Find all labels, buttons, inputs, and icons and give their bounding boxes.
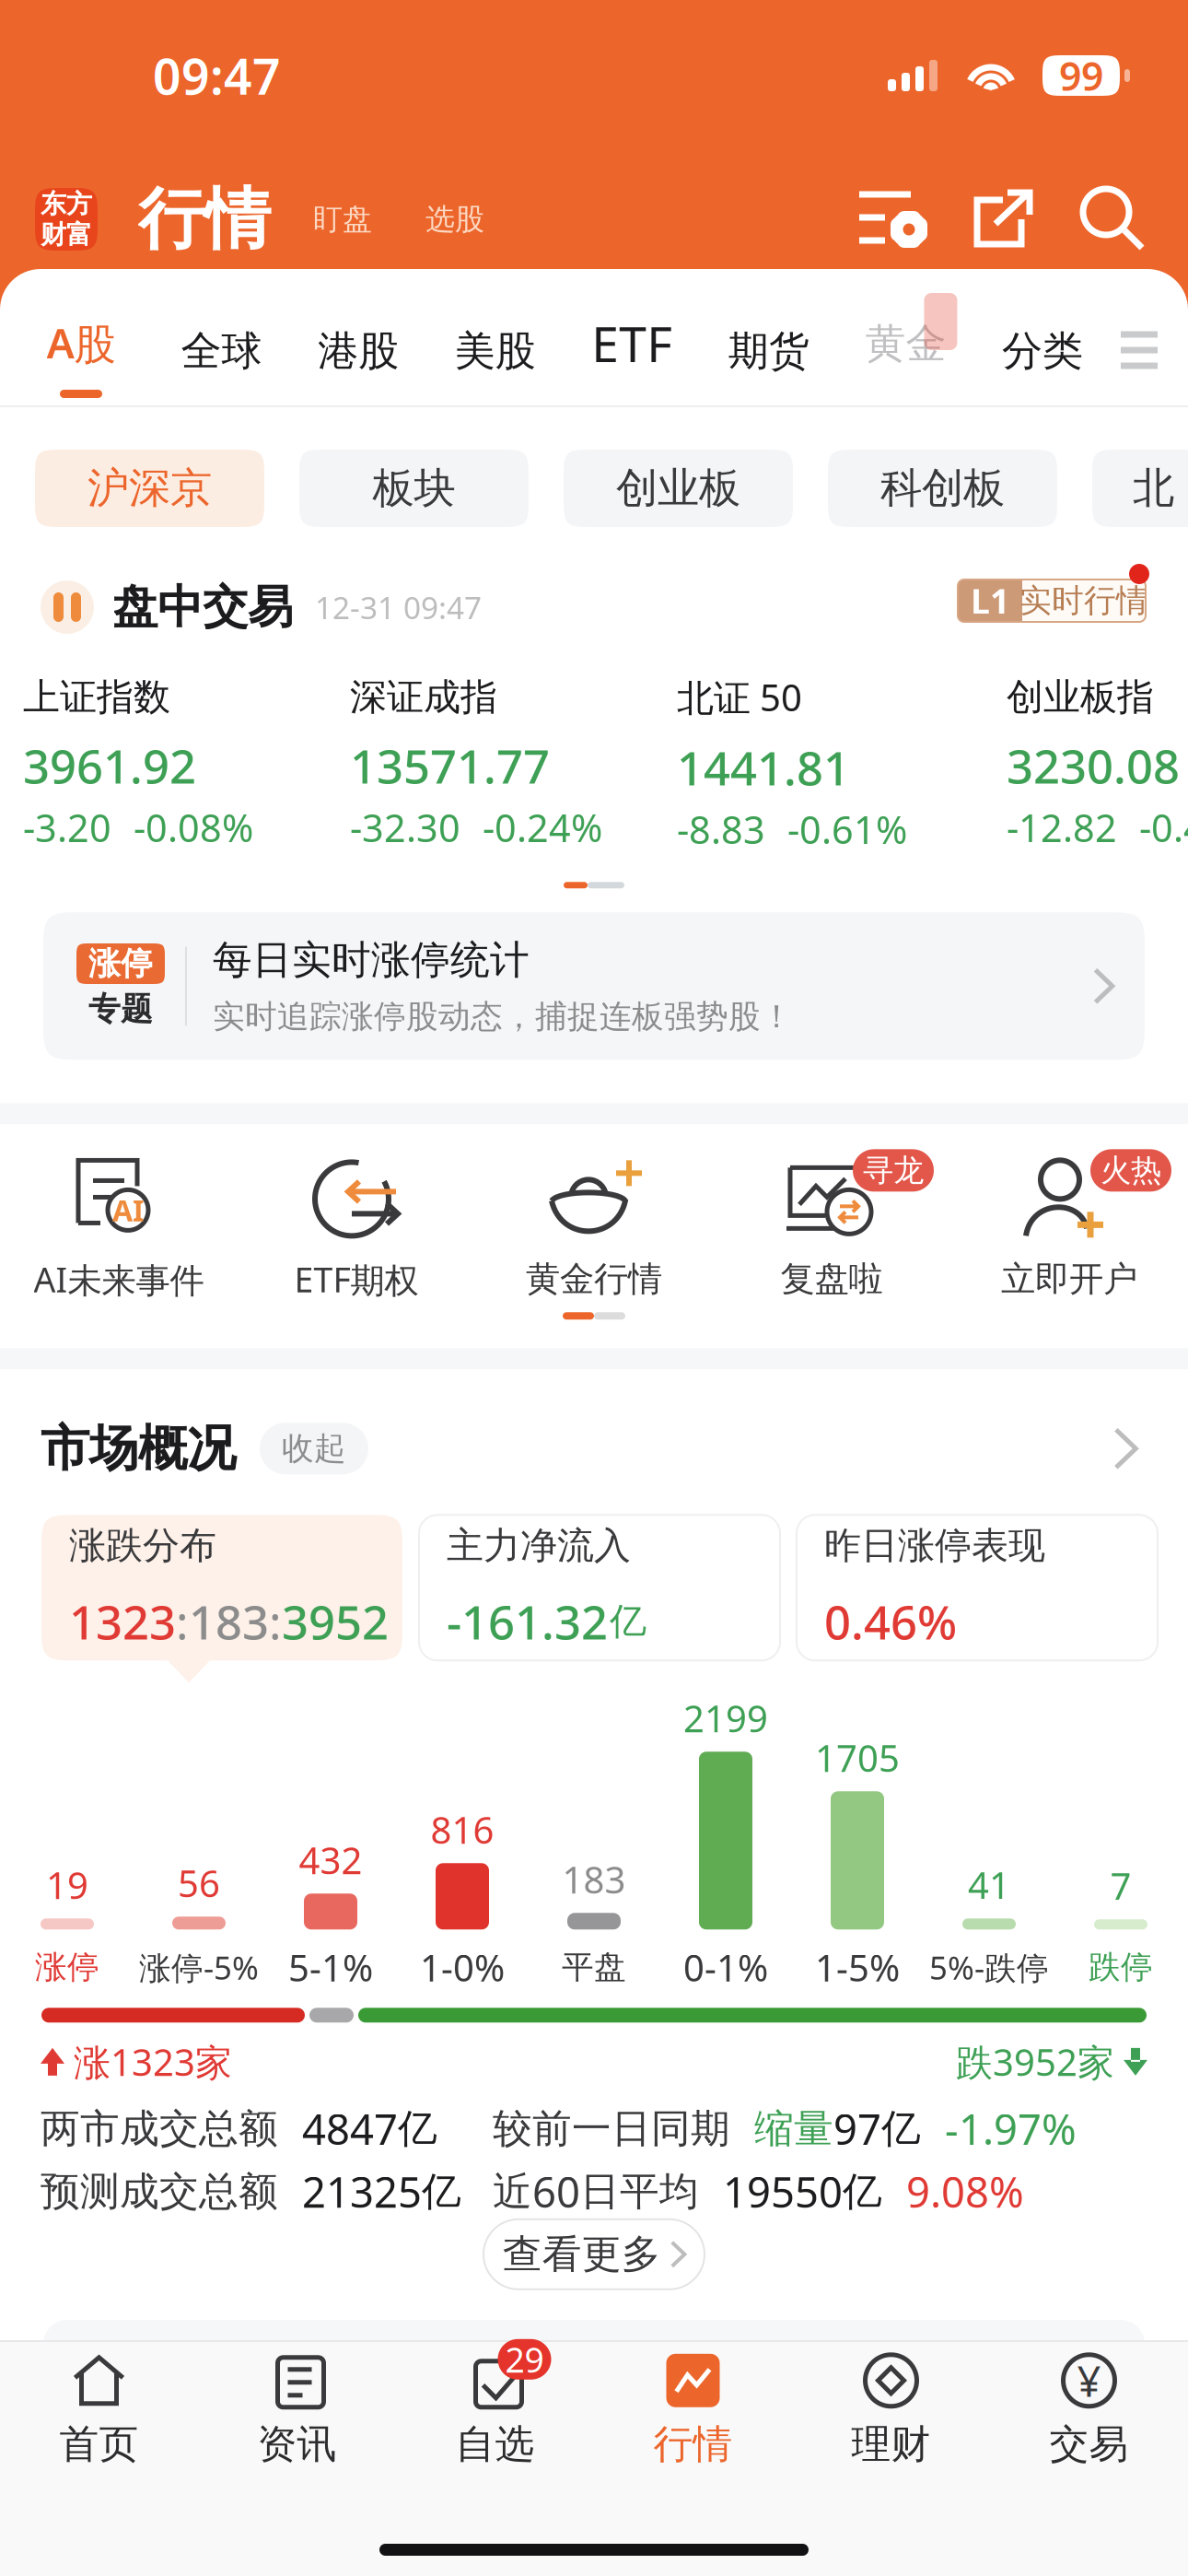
- staticText: 分类: [1002, 326, 1083, 376]
- button[interactable]: ¥: [990, 2342, 1188, 2480]
- staticText: 432: [299, 1835, 362, 1884]
- button[interactable]: 黄金行情: [475, 1157, 713, 1303]
- staticText: AI: [112, 1191, 144, 1230]
- staticText: :: [269, 1590, 282, 1652]
- staticText: 跌3952家: [956, 2037, 1114, 2086]
- staticText: 火热: [1101, 1152, 1161, 1189]
- staticText: 41: [968, 1860, 1010, 1909]
- staticText: 816: [431, 1805, 494, 1854]
- staticText: 3952: [282, 1590, 389, 1652]
- button[interactable]: A股: [37, 269, 125, 405]
- button[interactable]: 黄金: [865, 269, 946, 405]
- button[interactable]: 科创板: [828, 450, 1057, 527]
- staticText: 5-1%: [288, 1943, 373, 1992]
- staticText: 0-1%: [683, 1943, 768, 1992]
- staticText: A股: [47, 315, 116, 370]
- button[interactable]: 全球: [181, 269, 262, 405]
- staticText: 2199: [683, 1694, 768, 1742]
- staticText: 收起: [282, 1429, 346, 1468]
- button[interactable]: 收起: [260, 1423, 368, 1474]
- button[interactable]: Market overview details: [1098, 1421, 1153, 1476]
- staticText: 北: [1133, 463, 1174, 514]
- staticText: 立即开户: [1001, 1258, 1137, 1300]
- staticText: 沪深京: [87, 463, 212, 514]
- staticText: -0.40: [1139, 802, 1188, 852]
- button[interactable]: 昨日涨停表现: [797, 1515, 1158, 1660]
- button[interactable]: ETF: [592, 269, 673, 405]
- staticText: -8.83: [677, 804, 765, 854]
- staticText: 涨停-5%: [139, 1946, 259, 1988]
- button[interactable]: 资讯: [198, 2342, 396, 2480]
- staticText: 财富: [41, 219, 92, 251]
- staticText: 亿: [422, 2167, 461, 2216]
- button[interactable]: Share: [949, 181, 1059, 258]
- staticText: 盯盘: [313, 201, 372, 237]
- staticText: 资讯: [257, 2420, 337, 2468]
- button[interactable]: 板块: [299, 450, 529, 527]
- button[interactable]: 主力净流入: [419, 1515, 780, 1660]
- button[interactable]: ETF期权: [238, 1157, 475, 1303]
- staticText: 自选: [455, 2420, 535, 2468]
- button[interactable]: 寻龙: [713, 1157, 950, 1303]
- staticText: 昨日涨停表现: [824, 1523, 1045, 1568]
- staticText: 行情: [653, 2420, 733, 2468]
- button[interactable]: 沪深京: [35, 450, 264, 527]
- button[interactable]: 理财: [792, 2342, 990, 2480]
- button[interactable]: 美股: [455, 269, 536, 405]
- staticText: ¥: [1077, 2353, 1101, 2408]
- button[interactable]: 查看更多: [483, 2219, 705, 2289]
- button[interactable]: Search: [1059, 181, 1168, 258]
- button[interactable]: 涨跌分布: [41, 1515, 402, 1660]
- staticText: 黄金行情: [526, 1258, 662, 1300]
- staticText: 查看更多: [503, 2230, 661, 2278]
- staticText: 1441.81: [677, 736, 850, 798]
- staticText: 13571.77: [350, 734, 550, 796]
- staticText: 期货: [728, 326, 809, 376]
- staticText: 60: [532, 2164, 580, 2219]
- staticText: 实时行情: [1019, 581, 1148, 620]
- button[interactable]: 火热: [950, 1157, 1188, 1303]
- staticText: -1.97%: [945, 2101, 1077, 2156]
- staticText: 29: [505, 2336, 544, 2382]
- staticText: 主力净流入: [447, 1523, 631, 1568]
- staticText: 19: [46, 1860, 88, 1909]
- staticText: 9.08%: [906, 2164, 1024, 2219]
- staticText: 美股: [455, 326, 536, 376]
- staticText: 理财: [851, 2420, 931, 2468]
- button[interactable]: 港股: [318, 269, 399, 405]
- button[interactable]: 行情: [594, 2342, 792, 2480]
- staticText: 科创板: [880, 463, 1005, 514]
- staticText: 东方: [41, 188, 92, 220]
- button[interactable]: 北: [1092, 450, 1188, 527]
- staticText: 涨1323家: [74, 2037, 232, 2086]
- staticText: 板块: [373, 463, 455, 514]
- staticText: 日平均: [580, 2167, 699, 2216]
- button[interactable]: AI: [0, 1157, 238, 1303]
- staticText: 上证指数: [23, 674, 170, 720]
- button[interactable]: Customize list: [838, 181, 949, 258]
- button[interactable]: 创业板: [564, 450, 793, 527]
- button[interactable]: 29: [396, 2342, 594, 2480]
- staticText: 183: [189, 1590, 269, 1652]
- staticText: 涨停: [35, 1948, 99, 1987]
- button[interactable]: 涨停: [43, 912, 1145, 1060]
- staticText: 19550: [723, 2164, 843, 2219]
- staticText: -32.30: [350, 802, 460, 852]
- staticText: 近: [493, 2167, 532, 2216]
- staticText: 56: [178, 1858, 220, 1907]
- staticText: 5%-跌停: [929, 1946, 1049, 1988]
- staticText: AI未来事件: [34, 1256, 204, 1302]
- button[interactable]: 分类: [1002, 269, 1083, 405]
- staticText: 涨跌分布: [69, 1523, 216, 1568]
- button[interactable]: All categories: [1116, 269, 1166, 405]
- staticText: 两市成交总额: [41, 2105, 278, 2153]
- staticText: 1323: [69, 1590, 176, 1652]
- staticText: 0.46%: [824, 1590, 957, 1652]
- staticText: 创业板指: [1007, 674, 1154, 720]
- button[interactable]: 期货: [728, 269, 809, 405]
- staticText: 市场概况: [41, 1418, 236, 1479]
- staticText: 专题: [88, 989, 153, 1029]
- button[interactable]: 首页: [0, 2342, 198, 2480]
- staticText: 3230.08: [1007, 734, 1180, 796]
- staticText: 首页: [59, 2420, 139, 2468]
